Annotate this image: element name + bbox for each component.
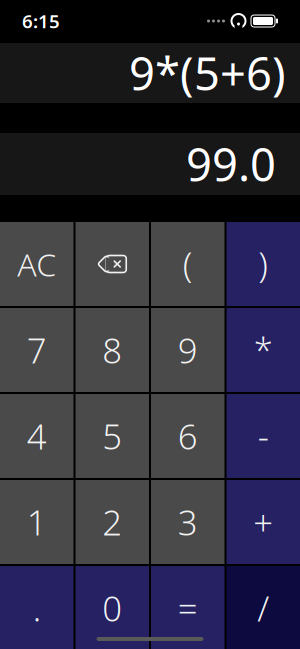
- staticText: -: [258, 413, 269, 459]
- staticText: 3: [178, 499, 198, 545]
- staticText: =: [178, 585, 198, 631]
- button[interactable]: 7: [0, 308, 73, 392]
- staticText: 9*(5+6): [129, 43, 286, 103]
- staticText: 8: [102, 327, 122, 373]
- button[interactable]: 1: [0, 480, 73, 564]
- staticText: 9: [178, 327, 198, 373]
- button[interactable]: -: [226, 394, 300, 478]
- button[interactable]: =: [151, 566, 224, 649]
- staticText: 6: [178, 413, 198, 459]
- button[interactable]: .: [0, 566, 73, 649]
- staticText: 1: [27, 499, 47, 545]
- button[interactable]: +: [226, 480, 300, 564]
- button[interactable]: 0: [75, 566, 149, 649]
- staticText: ): [258, 241, 268, 287]
- staticText: 7: [27, 327, 47, 373]
- button[interactable]: *: [226, 308, 300, 392]
- button[interactable]: /: [226, 566, 300, 649]
- staticText: 6:15: [22, 9, 60, 33]
- button[interactable]: AC: [0, 222, 73, 306]
- button[interactable]: 2: [75, 480, 149, 564]
- staticText: +: [253, 499, 273, 545]
- button[interactable]: (: [151, 222, 224, 306]
- button[interactable]: 8: [75, 308, 149, 392]
- button[interactable]: 5: [75, 394, 149, 478]
- staticText: 0: [102, 585, 122, 631]
- staticText: 2: [102, 499, 122, 545]
- staticText: *: [254, 327, 273, 373]
- staticText: .: [33, 585, 41, 631]
- staticText: AC: [17, 243, 56, 285]
- button[interactable]: [75, 222, 149, 306]
- button[interactable]: 9: [151, 308, 224, 392]
- staticText: 5: [102, 413, 122, 459]
- staticText: /: [257, 585, 269, 631]
- button[interactable]: 4: [0, 394, 73, 478]
- button[interactable]: 6: [151, 394, 224, 478]
- button[interactable]: 3: [151, 480, 224, 564]
- staticText: (: [183, 241, 193, 287]
- button[interactable]: ): [226, 222, 300, 306]
- staticText: 4: [27, 413, 47, 459]
- staticText: 99.0: [186, 134, 276, 194]
